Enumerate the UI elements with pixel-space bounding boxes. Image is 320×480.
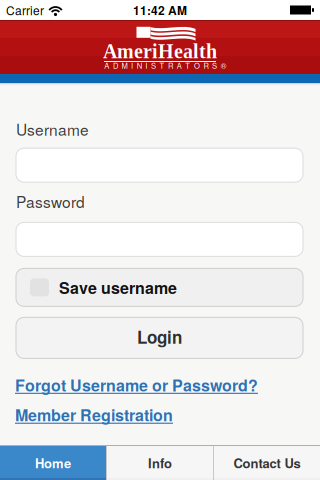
- staticText: Login: [137, 325, 182, 349]
- staticText: Home: [35, 454, 71, 472]
- button[interactable]: Contact Us: [214, 446, 320, 480]
- button[interactable]: Save username: [0, 268, 320, 306]
- staticText: A D M I N I S T R A T O R S ®: [104, 60, 227, 71]
- button[interactable]: Forgot Username or Password?: [0, 373, 258, 396]
- button[interactable]: Info: [107, 446, 213, 480]
- button[interactable]: Home: [0, 446, 106, 480]
- button[interactable]: Login: [0, 317, 320, 358]
- staticText: Forgot Username or Password?: [15, 373, 258, 396]
- staticText: Password: [16, 190, 85, 212]
- button[interactable]: Member Registration: [0, 403, 173, 426]
- staticText: Carrier: [6, 1, 44, 19]
- staticText: Member Registration: [15, 403, 173, 426]
- staticText: 11:42 AM: [133, 1, 187, 19]
- staticText: Save username: [59, 276, 177, 299]
- staticText: Username: [16, 118, 89, 140]
- staticText: Info: [148, 454, 172, 472]
- staticText: AmeriHealth: [103, 40, 217, 62]
- staticText: Contact Us: [233, 454, 300, 472]
